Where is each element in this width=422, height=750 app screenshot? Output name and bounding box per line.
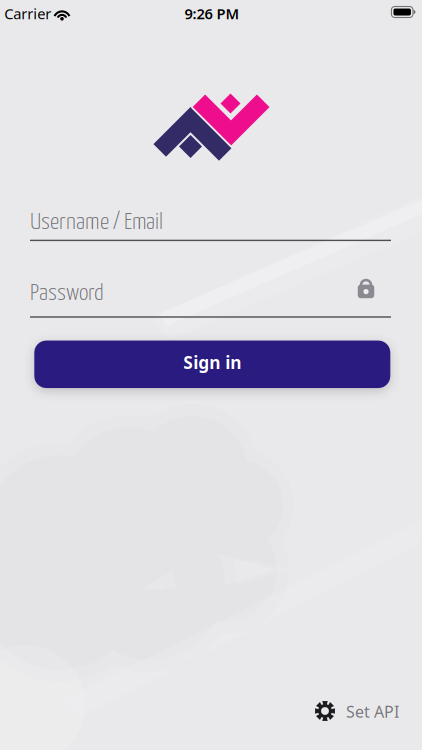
- button[interactable]: Set API: [306, 690, 402, 732]
- staticText: 9:26 PM: [184, 4, 239, 23]
- staticText: Sign in: [183, 351, 241, 374]
- button[interactable]: Username / Email: [30, 202, 391, 242]
- button[interactable]: Password: [30, 270, 391, 318]
- staticText: Carrier: [4, 4, 51, 23]
- staticText: Username / Email: [30, 211, 163, 234]
- staticText: Set API: [346, 701, 399, 722]
- button[interactable]: Sign in: [34, 341, 390, 388]
- staticText: Password: [30, 282, 104, 305]
